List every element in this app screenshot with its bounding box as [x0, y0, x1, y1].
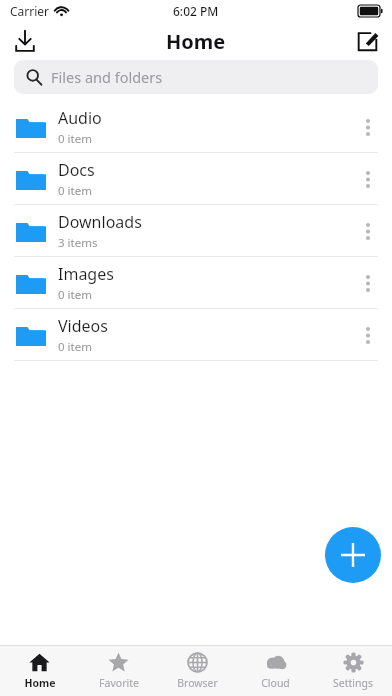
staticText: Home: [166, 28, 226, 55]
button[interactable]: Favorite: [79, 646, 158, 696]
staticText: Images: [58, 263, 114, 285]
staticText: Browser: [177, 676, 218, 690]
staticText: Docs: [58, 159, 95, 181]
button[interactable]: Browser: [158, 646, 236, 696]
button[interactable]: Download: [8, 24, 42, 58]
button[interactable]: More options: [348, 107, 388, 147]
staticText: Favorite: [99, 676, 139, 690]
button[interactable]: Downloads: [0, 205, 392, 257]
button[interactable]: Cloud: [236, 646, 314, 696]
staticText: Videos: [58, 315, 108, 337]
button[interactable]: Add: [325, 527, 381, 583]
staticText: 6:02 PM: [173, 3, 219, 19]
button[interactable]: Videos: [0, 309, 392, 361]
staticText: 3 items: [58, 235, 98, 251]
button[interactable]: Files and folders: [14, 60, 378, 94]
button[interactable]: Images: [0, 257, 392, 309]
button[interactable]: More options: [348, 263, 388, 303]
button[interactable]: Docs: [0, 153, 392, 205]
staticText: 0 item: [58, 131, 92, 147]
staticText: Home: [24, 676, 56, 690]
button[interactable]: More options: [348, 315, 388, 355]
button[interactable]: Audio: [0, 101, 392, 153]
staticText: Cloud: [261, 676, 290, 690]
button[interactable]: Home: [0, 646, 79, 696]
button[interactable]: More options: [348, 211, 388, 251]
button[interactable]: More options: [348, 159, 388, 199]
button[interactable]: Edit: [350, 24, 384, 58]
staticText: Settings: [333, 676, 373, 690]
staticText: Downloads: [58, 211, 142, 233]
staticText: Files and folders: [51, 67, 163, 87]
staticText: 0 item: [58, 339, 92, 355]
button[interactable]: Settings: [314, 646, 392, 696]
staticText: Carrier: [10, 3, 50, 19]
staticText: 0 item: [58, 287, 92, 303]
staticText: 0 item: [58, 183, 92, 199]
staticText: Audio: [58, 107, 102, 129]
